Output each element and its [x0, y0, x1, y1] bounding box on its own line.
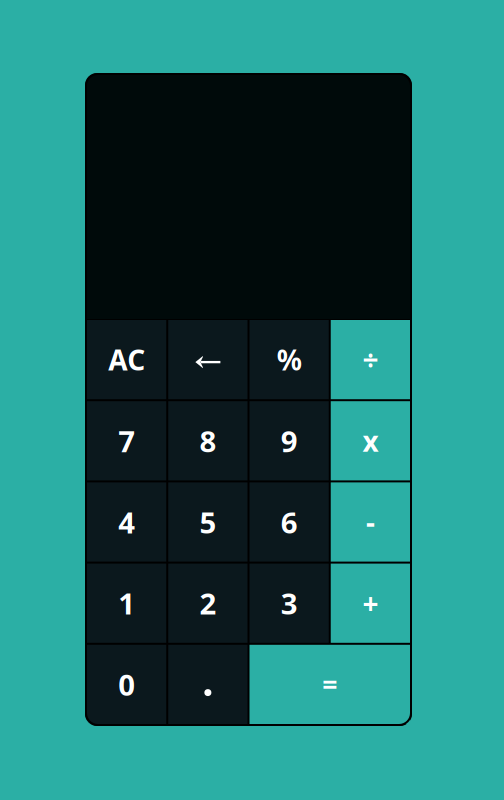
button[interactable]: Backspace	[168, 320, 247, 399]
staticText: 6	[281, 502, 298, 541]
staticText: -	[366, 503, 375, 541]
button[interactable]: %	[249, 320, 329, 399]
staticText: ÷	[362, 341, 378, 378]
staticText: 4	[118, 502, 135, 541]
button[interactable]: AC	[87, 320, 166, 399]
button[interactable]: 7	[87, 401, 166, 480]
button[interactable]: 6	[249, 482, 329, 562]
button[interactable]: ÷	[331, 320, 410, 399]
button[interactable]: 5	[168, 482, 247, 562]
staticText: 7	[118, 421, 135, 460]
staticText: 8	[199, 421, 216, 460]
button[interactable]: Decimal point	[168, 645, 247, 724]
button[interactable]: x	[331, 401, 410, 480]
staticText: 2	[199, 584, 216, 623]
staticText: 3	[281, 584, 298, 623]
staticText: +	[362, 585, 378, 622]
staticText: AC	[108, 341, 145, 378]
button[interactable]: +	[331, 564, 410, 643]
button[interactable]: 8	[168, 401, 247, 480]
staticText: 5	[199, 502, 216, 541]
staticText: 1	[118, 584, 135, 623]
button[interactable]: -	[331, 482, 410, 562]
button[interactable]: 0	[87, 645, 166, 724]
button[interactable]: 3	[249, 564, 329, 643]
button[interactable]: 4	[87, 482, 166, 562]
staticText: 0	[118, 665, 135, 704]
staticText: =	[322, 667, 337, 702]
button[interactable]: 9	[249, 401, 329, 480]
button[interactable]: 2	[168, 564, 247, 643]
button[interactable]: 1	[87, 564, 166, 643]
staticText: %	[277, 341, 302, 378]
button[interactable]: =	[249, 645, 410, 724]
staticText: 9	[281, 421, 298, 460]
staticText: x	[362, 422, 378, 459]
